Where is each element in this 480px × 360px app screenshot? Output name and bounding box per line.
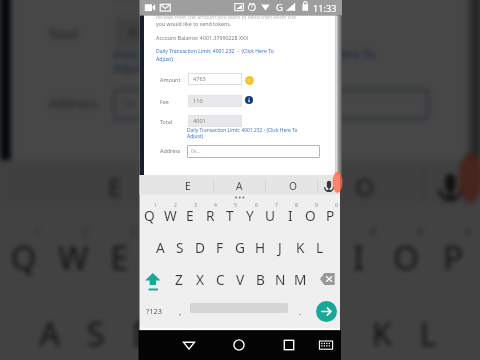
button[interactable]: Y bbox=[239, 220, 286, 291]
button[interactable]: O bbox=[269, 177, 317, 195]
button[interactable]: F bbox=[168, 296, 215, 360]
button[interactable]: D bbox=[120, 296, 168, 360]
button[interactable]: W bbox=[160, 200, 180, 230]
button[interactable]: I bbox=[334, 220, 381, 291]
staticText: B bbox=[256, 270, 265, 289]
button[interactable]: X bbox=[190, 264, 210, 294]
staticText: E bbox=[108, 170, 122, 203]
staticText: R bbox=[206, 206, 215, 225]
staticText: Q bbox=[11, 234, 37, 279]
button[interactable]: 0x... bbox=[113, 89, 429, 120]
staticText: K bbox=[296, 238, 305, 257]
button[interactable]: T bbox=[191, 220, 239, 291]
staticText: 4 bbox=[214, 202, 217, 209]
button[interactable]: 4001 bbox=[115, 18, 244, 46]
button[interactable]: L bbox=[405, 296, 453, 360]
button[interactable]: Token bbox=[245, 76, 254, 85]
button[interactable]: A bbox=[25, 296, 72, 360]
button[interactable]: Fee information bbox=[245, 96, 253, 104]
staticText: I bbox=[353, 234, 365, 279]
button[interactable]: Keyboard bbox=[317, 336, 335, 354]
staticText: O bbox=[305, 206, 316, 225]
button[interactable]: K bbox=[290, 232, 310, 262]
button[interactable]: P bbox=[320, 200, 340, 230]
button[interactable]: I bbox=[280, 200, 300, 230]
button[interactable]: H bbox=[263, 296, 310, 360]
button[interactable]: E bbox=[180, 200, 200, 230]
button[interactable]: K bbox=[358, 296, 405, 360]
button[interactable]: S bbox=[73, 296, 120, 360]
button[interactable]: Q bbox=[139, 200, 159, 230]
staticText: D bbox=[132, 310, 156, 355]
button[interactable]: D bbox=[190, 232, 210, 262]
button[interactable]: L bbox=[310, 232, 330, 262]
button[interactable]: R bbox=[144, 220, 191, 291]
button[interactable]: 110 bbox=[188, 95, 242, 107]
staticText: N bbox=[275, 270, 286, 289]
staticText: E bbox=[185, 179, 191, 193]
button[interactable]: O bbox=[381, 220, 429, 291]
button[interactable]: C bbox=[210, 264, 230, 294]
button[interactable]: Voice input bbox=[321, 178, 337, 194]
staticText: , bbox=[179, 306, 182, 318]
button[interactable]: J bbox=[270, 232, 290, 262]
staticText: H bbox=[274, 310, 301, 355]
button[interactable]: 4763 bbox=[188, 73, 242, 85]
button[interactable]: ?123 bbox=[143, 303, 165, 319]
button[interactable]: M bbox=[290, 264, 310, 294]
button[interactable]: N bbox=[270, 264, 290, 294]
button[interactable]: A bbox=[215, 177, 263, 195]
staticText: E bbox=[186, 206, 194, 225]
button[interactable]: Backspace bbox=[320, 273, 335, 285]
button[interactable]: G bbox=[215, 296, 263, 360]
staticText: J bbox=[278, 238, 282, 257]
button[interactable]: Q bbox=[0, 220, 46, 291]
button[interactable]: U bbox=[286, 220, 334, 291]
button[interactable]: F bbox=[210, 232, 230, 262]
staticText: M bbox=[294, 270, 307, 289]
staticText: R bbox=[158, 234, 179, 279]
button[interactable]: G bbox=[230, 232, 250, 262]
staticText: P bbox=[443, 234, 465, 279]
button[interactable]: . bbox=[294, 305, 306, 319]
staticText: Daily Transaction Limit: 4001.232 - (Cli… bbox=[156, 48, 274, 55]
button[interactable]: E bbox=[164, 177, 212, 195]
button[interactable]: W bbox=[49, 220, 96, 291]
button[interactable]: Back bbox=[180, 336, 198, 354]
staticText: 2 bbox=[174, 202, 177, 209]
button[interactable]: A bbox=[179, 165, 293, 208]
button[interactable]: Shift bbox=[145, 272, 161, 291]
button[interactable]: S bbox=[170, 232, 190, 262]
button[interactable]: Send bbox=[316, 301, 337, 322]
staticText: 4001 bbox=[127, 23, 158, 42]
button[interactable]: P bbox=[429, 220, 476, 291]
button[interactable]: Voice input bbox=[431, 167, 469, 205]
button[interactable]: O bbox=[300, 200, 320, 230]
button[interactable]: R bbox=[200, 200, 220, 230]
button[interactable]: U bbox=[260, 200, 280, 230]
button[interactable]: Y bbox=[240, 200, 260, 230]
button[interactable]: A bbox=[150, 232, 170, 262]
staticText: 4763 bbox=[193, 75, 206, 83]
button[interactable]: Recents bbox=[280, 336, 298, 354]
button[interactable]: J bbox=[310, 296, 358, 360]
staticText: 1 bbox=[154, 202, 157, 209]
button[interactable]: H bbox=[250, 232, 270, 262]
staticText: 4001 bbox=[193, 117, 206, 125]
button[interactable]: E bbox=[96, 220, 144, 291]
button[interactable]: T bbox=[220, 200, 240, 230]
button[interactable]: V bbox=[230, 264, 250, 294]
button[interactable]: E bbox=[58, 165, 172, 208]
button[interactable]: O bbox=[308, 165, 422, 208]
staticText: H bbox=[255, 238, 266, 257]
staticText: Address bbox=[49, 94, 99, 110]
button[interactable]: , bbox=[174, 305, 186, 319]
button[interactable]: B bbox=[250, 264, 270, 294]
button[interactable]: 4001 bbox=[188, 115, 242, 127]
button[interactable]: Z bbox=[169, 264, 189, 294]
button[interactable]: Home bbox=[230, 336, 248, 354]
button[interactable]: 0x... bbox=[187, 145, 320, 158]
